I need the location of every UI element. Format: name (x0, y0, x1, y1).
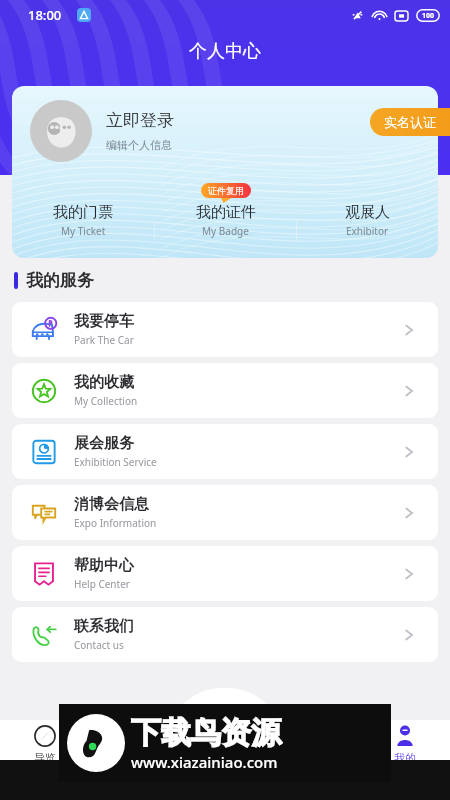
button[interactable]: 导览 (0, 722, 90, 779)
staticText: 导览 (34, 751, 56, 765)
button[interactable]: 立即登录 (106, 110, 174, 131)
staticText: Park The Car (74, 333, 134, 347)
button[interactable]: 观展人 (297, 180, 438, 240)
staticText: Exhibitor (346, 224, 389, 238)
button[interactable]: 证件复用 (155, 181, 296, 240)
staticText: My Ticket (61, 224, 106, 238)
staticText: Help Center (74, 577, 130, 591)
button[interactable]: 会展 (90, 722, 180, 779)
staticText: My Badge (202, 224, 249, 238)
button[interactable]: 我的收藏 (12, 363, 438, 418)
staticText: 我的服务 (26, 270, 94, 291)
button[interactable]: Mascot (198, 700, 252, 754)
staticText: 会展 (124, 751, 146, 765)
staticText: Expo Information (74, 516, 157, 530)
staticText: 展会服务 (74, 434, 134, 453)
button[interactable]: 帮助中心 (12, 546, 438, 601)
staticText: 实名认证 (384, 114, 436, 130)
staticText: 消博会信息 (74, 495, 149, 514)
staticText: 联系我们 (74, 617, 134, 636)
button[interactable]: Avatar (30, 100, 92, 162)
button[interactable]: 地图 (270, 722, 360, 779)
staticText: 下载鸟资源 (131, 714, 281, 752)
staticText: 帮助中心 (74, 556, 134, 575)
staticText: Arena (123, 765, 148, 777)
button[interactable]: 实名认证 (370, 108, 450, 136)
staticText: My Collection (74, 394, 138, 408)
staticText: 100 (422, 11, 435, 21)
staticText: Exhibition Service (74, 455, 157, 469)
staticText: 证件复用 (208, 185, 244, 196)
staticText: 18:00 (28, 6, 62, 24)
button[interactable]: 编辑个人信息 (106, 138, 172, 152)
staticText: 观展人 (345, 203, 390, 222)
button[interactable]: 我要停车 (12, 302, 438, 357)
staticText: www.xiazainiao.com (131, 752, 278, 772)
staticText: 个人中心 (189, 40, 261, 63)
button[interactable]: 展会服务 (12, 424, 438, 479)
staticText: 我的证件 (196, 203, 256, 222)
button[interactable]: 联系我们 (12, 607, 438, 662)
staticText: Contact us (74, 638, 124, 652)
button[interactable]: 消博会信息 (12, 485, 438, 540)
staticText: 我的收藏 (74, 373, 134, 392)
staticText: 我的门票 (53, 203, 113, 222)
button[interactable]: 我的门票 (12, 180, 154, 240)
staticText: 我要停车 (74, 312, 134, 331)
staticText: 我的 (394, 751, 416, 765)
button[interactable]: 我的 (360, 722, 450, 779)
